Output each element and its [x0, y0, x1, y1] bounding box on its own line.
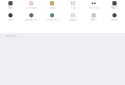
button[interactable]: Likes — [0, 12, 21, 24]
staticText: Wallet — [110, 6, 118, 9]
staticText: Recents — [5, 34, 16, 38]
staticText: Games — [69, 18, 77, 21]
button[interactable]: Channels — [42, 12, 62, 24]
button[interactable]: Moments — [21, 12, 42, 24]
staticText: More — [111, 18, 118, 21]
staticText: Mail — [8, 6, 13, 9]
button[interactable]: Cards — [42, 0, 62, 12]
button[interactable]: More — [104, 12, 125, 24]
button[interactable]: Contacts — [21, 0, 42, 12]
staticText: Pay — [71, 6, 75, 9]
staticText: Cards — [49, 6, 56, 9]
staticText: Friends — [89, 6, 99, 9]
staticText: Mini — [91, 18, 97, 21]
button[interactable]: Games — [62, 12, 83, 24]
button[interactable]: Pay — [62, 0, 83, 12]
button[interactable]: Mail — [0, 0, 21, 12]
button[interactable]: Wallet — [104, 0, 125, 12]
staticText: Likes — [7, 18, 13, 21]
staticText: Moments — [25, 18, 37, 21]
button[interactable]: Friends — [83, 0, 104, 12]
staticText: Channels — [46, 18, 59, 21]
staticText: Contacts — [26, 6, 37, 9]
button[interactable]: Mini — [83, 12, 104, 24]
